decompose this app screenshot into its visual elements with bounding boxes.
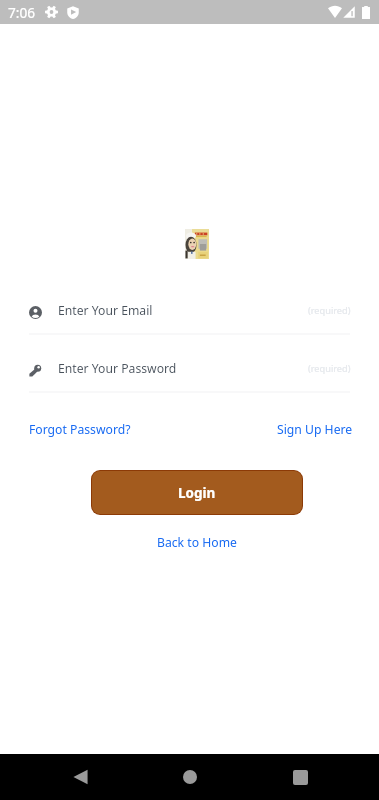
button[interactable]: Login (92, 471, 302, 514)
button[interactable]: Back to Home (157, 534, 237, 551)
staticText: 7:06 (8, 3, 35, 22)
staticText: (required) (308, 304, 351, 317)
button[interactable]: Enter Your Password (29, 350, 351, 386)
button[interactable]: Forgot Password? (29, 421, 131, 438)
staticText: Enter Your Email (58, 302, 153, 319)
button[interactable]: Enter Your Email (29, 292, 351, 328)
button[interactable]: Sign Up Here (277, 421, 353, 438)
staticText: Login (178, 484, 216, 502)
staticText: Enter Your Password (58, 360, 177, 377)
button[interactable]: Back (48, 754, 112, 800)
staticText: (required) (308, 362, 351, 375)
button[interactable]: Recent apps (268, 754, 332, 800)
button[interactable]: Home (158, 754, 222, 800)
